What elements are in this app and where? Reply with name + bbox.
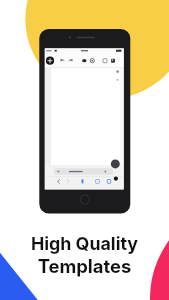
- button[interactable]: High Quality: [0, 233, 169, 277]
- staticText: High Quality: [0, 233, 169, 255]
- staticText: Templates: [0, 255, 169, 277]
